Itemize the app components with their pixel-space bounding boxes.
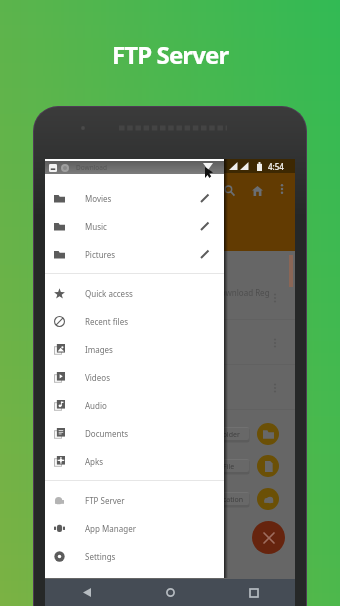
staticText: Audio [85, 400, 107, 411]
staticText: Movies [85, 193, 112, 204]
staticText: Videos [85, 372, 110, 383]
staticText: Music [85, 221, 107, 232]
staticText: Apks [85, 456, 104, 467]
staticText: Settings [85, 551, 116, 562]
button[interactable]: File [208, 458, 250, 475]
button[interactable]: Documents [45, 419, 224, 447]
button[interactable]: Home [129, 579, 212, 606]
button[interactable]: Recent files [45, 307, 224, 335]
button[interactable]: Pictures [45, 240, 224, 268]
staticText: Images [85, 344, 113, 355]
staticText: File [223, 462, 235, 472]
button[interactable]: Folder [208, 426, 250, 443]
button[interactable]: More [271, 383, 279, 393]
button[interactable]: Home [245, 178, 270, 203]
staticText: 4:54 [268, 161, 284, 172]
staticText: FTP Server [112, 38, 229, 71]
button[interactable]: Movies [45, 184, 224, 212]
button[interactable]: App Manager [45, 514, 224, 542]
button[interactable]: Recents [212, 579, 295, 606]
button[interactable]: More options [271, 178, 292, 199]
button[interactable]: File [257, 455, 279, 477]
button[interactable]: FTP Server [45, 486, 224, 514]
button[interactable]: More [271, 338, 279, 348]
staticText: Download [76, 163, 107, 172]
button[interactable]: Images [45, 335, 224, 363]
button[interactable]: Edit Movies [196, 189, 214, 207]
button[interactable]: Edit Pictures [196, 245, 214, 263]
button[interactable]: Audio [45, 391, 224, 419]
button[interactable]: Location [257, 488, 279, 510]
button[interactable]: Quick access [45, 279, 224, 307]
button[interactable]: Apks [45, 447, 224, 475]
staticText: FTP Server [85, 495, 125, 506]
button[interactable]: Videos [45, 363, 224, 391]
staticText: Quick access [85, 288, 133, 299]
button[interactable]: Folder [257, 423, 279, 445]
staticText: Recent files [85, 316, 128, 327]
staticText: App Manager [85, 523, 136, 534]
button[interactable]: Edit Music [196, 217, 214, 235]
button[interactable]: Back [45, 579, 129, 606]
staticText: Documents [85, 428, 129, 439]
staticText: Download Reg [215, 287, 270, 298]
staticText: Folder [219, 430, 240, 440]
staticText: Pictures [85, 249, 116, 260]
button[interactable]: Music [45, 212, 224, 240]
button[interactable]: Search [217, 178, 242, 203]
button[interactable]: More [271, 293, 279, 303]
staticText: Location [215, 495, 244, 505]
button[interactable]: Location [208, 491, 250, 508]
button[interactable]: Settings [45, 542, 224, 570]
button[interactable]: Close [252, 521, 285, 554]
